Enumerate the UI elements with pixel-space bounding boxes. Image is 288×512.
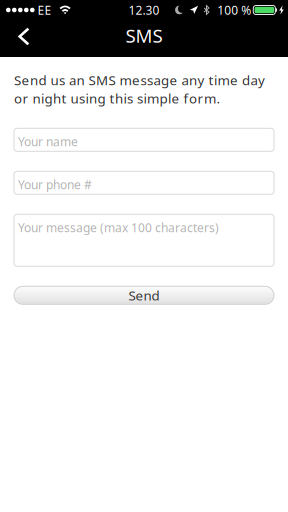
staticText: Your message (max 100 characters) — [18, 219, 219, 236]
staticText: Your phone # — [18, 176, 92, 193]
staticText: SMS — [125, 23, 162, 48]
button[interactable]: Your name — [14, 128, 274, 151]
staticText: Send us an SMS message any time day — [14, 71, 265, 89]
button[interactable]: Send — [14, 286, 274, 304]
staticText: Send — [128, 286, 159, 304]
button[interactable]: Your message (max 100 characters) — [14, 214, 274, 266]
staticText: EE — [38, 2, 52, 18]
button[interactable]: Back — [0, 20, 47, 57]
staticText: 12.30 — [128, 2, 159, 18]
staticText: or night using this simple form. — [14, 89, 220, 107]
staticText: 100 % — [217, 2, 251, 18]
button[interactable]: Your phone # — [14, 171, 274, 194]
staticText: Your name — [18, 133, 78, 150]
